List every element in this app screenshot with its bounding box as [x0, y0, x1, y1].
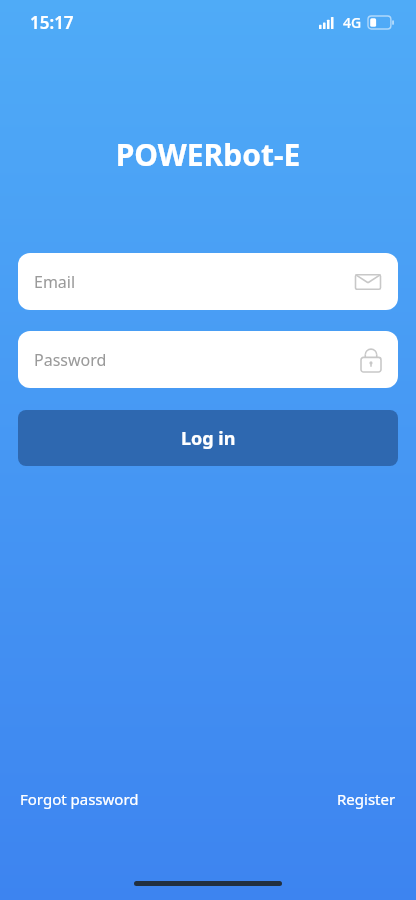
staticText: 15:17	[30, 11, 74, 34]
staticText: POWERbot-E	[0, 134, 416, 175]
button[interactable]: Password	[18, 331, 398, 388]
staticText: Forgot password	[20, 789, 139, 809]
staticText: Email	[34, 271, 76, 293]
staticText: Password	[34, 349, 107, 371]
button[interactable]: Register	[335, 783, 398, 815]
button[interactable]: Log in	[18, 410, 398, 466]
button[interactable]: Email	[18, 253, 398, 310]
button[interactable]: Forgot password	[18, 783, 141, 815]
staticText: 4G	[343, 13, 362, 32]
staticText: Log in	[181, 426, 236, 451]
staticText: Register	[337, 789, 396, 809]
